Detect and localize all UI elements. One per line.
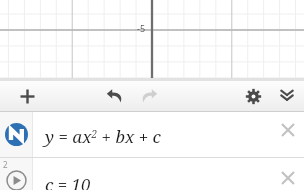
button[interactable]: y = ax2 + bx + c [0, 112, 304, 157]
staticText: c = 10 [45, 173, 91, 190]
button[interactable]: Delete expression 2 [278, 168, 298, 188]
button[interactable]: Delete expression 1 [278, 120, 298, 140]
button[interactable]: 2 [0, 158, 304, 190]
button[interactable]: Play slider [6, 170, 27, 190]
staticText: -5 [137, 22, 146, 34]
button[interactable]: Undo [96, 81, 132, 111]
button[interactable]: Redo [132, 81, 168, 111]
staticText: y = ax2 + bx + c [45, 125, 161, 148]
button[interactable]: Collapse keypad [270, 81, 304, 111]
button[interactable]: Settings [236, 81, 270, 111]
button[interactable]: Add expression [0, 81, 54, 111]
staticText: 2 [3, 159, 8, 170]
